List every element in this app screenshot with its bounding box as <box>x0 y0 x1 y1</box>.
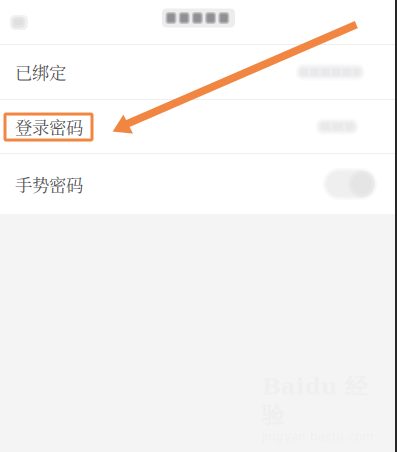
button[interactable]: 手势密码 <box>0 154 397 214</box>
button[interactable]: 已绑定 <box>0 45 397 99</box>
staticText: 登录密码 <box>15 114 83 139</box>
staticText: 手势密码 <box>15 171 83 196</box>
staticText: 已绑定 <box>15 59 66 84</box>
button[interactable]: 登录密码 <box>0 100 397 153</box>
button[interactable]: 返回 <box>0 0 44 44</box>
